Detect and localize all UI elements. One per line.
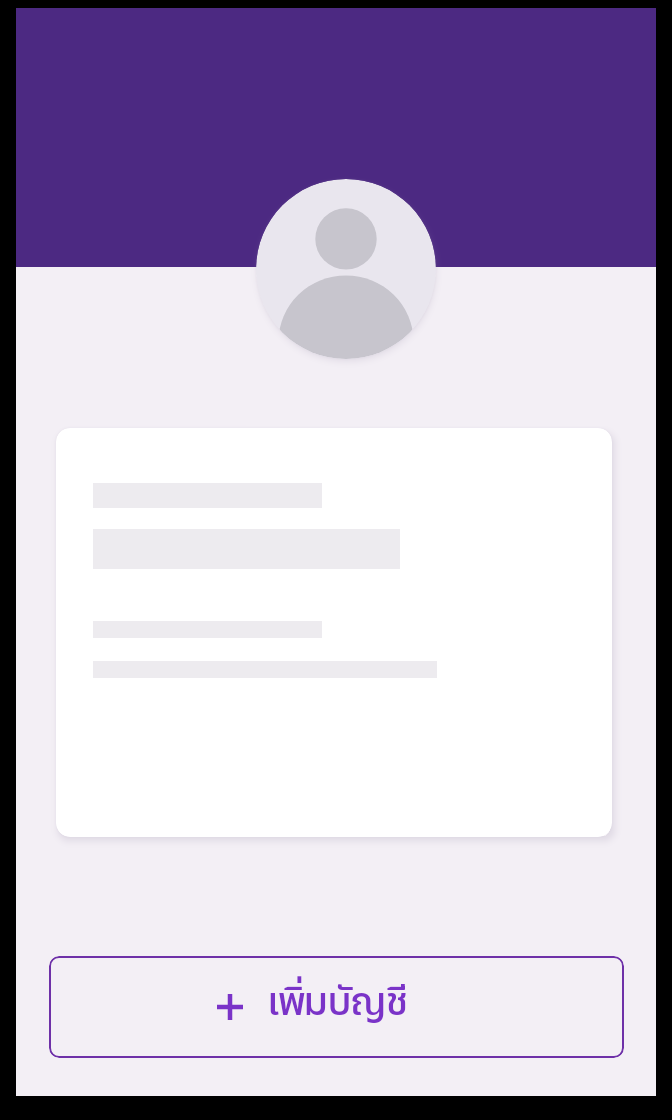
staticText: เพิ่มบัญชี <box>267 973 407 1033</box>
button[interactable]: Profile photo <box>256 179 436 359</box>
button[interactable]: เพิ่มบัญชี <box>49 956 624 1058</box>
